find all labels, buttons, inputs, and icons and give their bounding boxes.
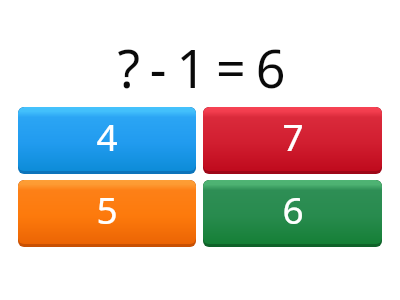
staticText: 4 [96,111,118,161]
button[interactable]: 4 [18,107,196,174]
staticText: 7 [282,111,304,161]
staticText: ? - 1 = 6 [117,32,284,103]
button[interactable]: 5 [18,180,196,247]
staticText: 6 [282,184,304,234]
button[interactable]: 6 [203,180,382,247]
button[interactable]: 7 [203,107,382,174]
staticText: 5 [96,184,118,234]
